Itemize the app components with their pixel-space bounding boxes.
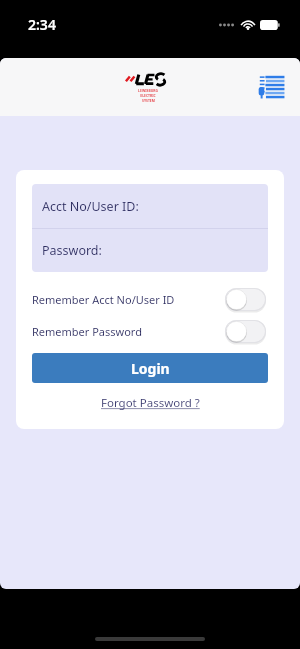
staticText: ELECTRIC	[140, 93, 156, 98]
staticText: Login	[131, 359, 170, 378]
button[interactable]: Login	[32, 353, 268, 383]
button[interactable]: Password:	[32, 229, 268, 272]
button[interactable]: Forgot Password ?	[95, 393, 206, 413]
staticText: SYSTEM	[142, 98, 155, 103]
staticText: Remember Password	[32, 324, 142, 339]
other: Toggle	[225, 288, 266, 311]
staticText: Password:	[42, 242, 102, 259]
staticText: LEWISBURG	[138, 88, 158, 93]
staticText: 2:34	[28, 15, 56, 34]
staticText: Acct No/User ID:	[42, 198, 139, 215]
staticText: Remember Acct No/User ID	[32, 292, 175, 307]
button[interactable]: Acct No/User ID:	[32, 184, 268, 228]
button[interactable]: Bill stack	[254, 70, 288, 104]
button[interactable]: Remember Acct No/User ID	[32, 286, 268, 312]
button[interactable]: Remember Password	[32, 318, 268, 344]
staticText: Forgot Password ?	[101, 395, 200, 411]
other: Toggle	[225, 320, 266, 343]
